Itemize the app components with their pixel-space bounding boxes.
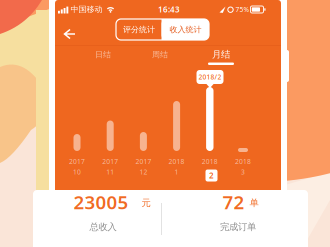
staticText: 日结 (95, 50, 111, 59)
staticText: 12 (139, 168, 147, 176)
staticText: 中国移动 (70, 4, 102, 14)
staticText: 2017 (135, 157, 151, 166)
staticText: 75% (235, 5, 249, 14)
staticText: 2 (209, 170, 214, 181)
staticText: 收入统计 (169, 25, 201, 34)
staticText: 2018 (235, 157, 251, 166)
button[interactable] (56, 22, 82, 46)
staticText: 总收入 (89, 221, 116, 233)
button[interactable] (139, 44, 181, 66)
staticText: 16:43 (158, 4, 180, 15)
staticText: 3 (241, 168, 245, 176)
staticText: 1 (175, 168, 179, 176)
staticText: 2017 (69, 157, 85, 166)
staticText: 10 (73, 168, 81, 176)
staticText: 23005 (73, 190, 128, 214)
staticText: 11 (106, 168, 114, 176)
button[interactable] (82, 44, 124, 66)
button[interactable] (200, 46, 242, 68)
button[interactable] (162, 19, 209, 40)
staticText: 2017 (102, 157, 118, 166)
staticText: 评分统计 (123, 25, 155, 34)
staticText: 72 (222, 190, 244, 214)
staticText: 完成订单 (220, 221, 256, 233)
staticText: 单 (249, 197, 258, 209)
staticText: 周结 (152, 50, 168, 59)
staticText: 月结 (212, 49, 230, 60)
staticText: 2018/2 (198, 73, 221, 81)
button[interactable] (116, 19, 162, 40)
staticText: 2018 (202, 157, 218, 166)
staticText: 2018 (169, 157, 185, 166)
staticText: 元 (141, 197, 150, 209)
